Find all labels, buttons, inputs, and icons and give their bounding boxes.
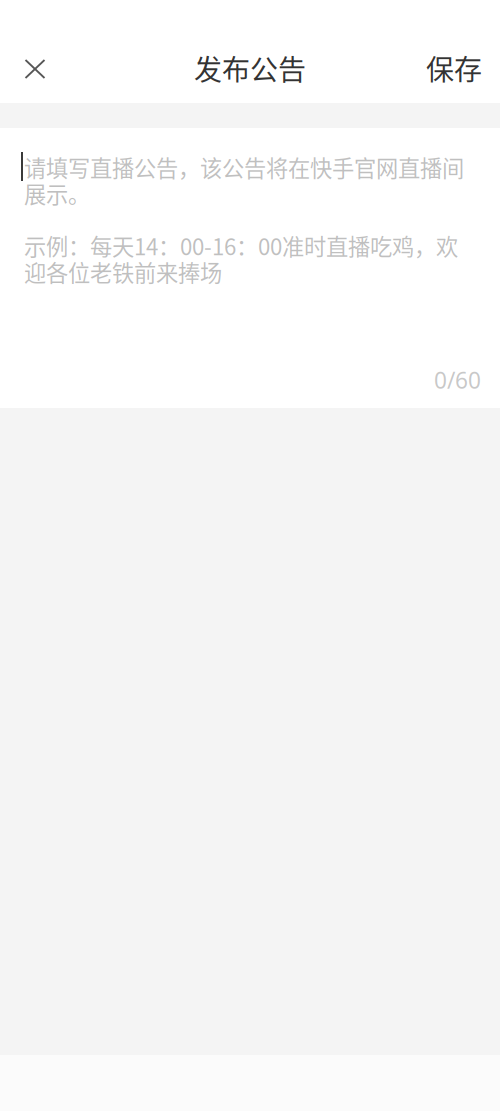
staticText: 示例：每天14：00-16：00准时直播吃鸡，欢迎各位老铁前来捧场 bbox=[24, 229, 458, 288]
staticText: 0/60 bbox=[434, 365, 481, 395]
staticText: 发布公告 bbox=[194, 48, 306, 88]
staticText: 保存 bbox=[426, 48, 482, 88]
button[interactable]: Close bbox=[13, 46, 57, 90]
button[interactable]: 保存 bbox=[415, 46, 493, 90]
staticText: 请填写直播公告，该公告将在快手官网直播间展示。 bbox=[24, 151, 464, 209]
button[interactable]: 请填写直播公告，该公告将在快手官网直播间展示。 bbox=[0, 128, 500, 408]
